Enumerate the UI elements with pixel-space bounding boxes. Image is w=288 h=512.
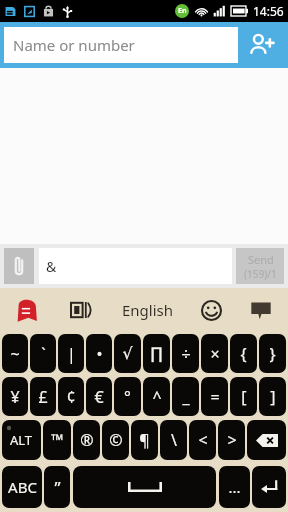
staticText: =: [210, 386, 220, 408]
button[interactable]: ∏: [143, 334, 170, 373]
button[interactable]: °: [114, 377, 141, 416]
button[interactable]: €: [86, 377, 112, 416]
staticText: >: [227, 429, 237, 451]
button[interactable]: ™: [43, 420, 71, 460]
button[interactable]: Theme: [234, 288, 288, 332]
staticText: ”: [54, 476, 61, 499]
staticText: ™: [51, 429, 64, 451]
staticText: √: [122, 344, 133, 363]
staticText: €: [94, 386, 104, 408]
button[interactable]: ALT: [2, 420, 41, 460]
staticText: ...: [228, 477, 241, 497]
button[interactable]: ×: [201, 334, 228, 373]
staticText: En: [178, 6, 187, 16]
button[interactable]: [: [230, 377, 257, 416]
button[interactable]: Add contact: [238, 27, 284, 63]
staticText: }: [269, 343, 276, 365]
staticText: £: [38, 386, 48, 408]
staticText: ×: [210, 343, 220, 365]
button[interactable]: ...: [219, 466, 250, 508]
staticText: <: [198, 429, 208, 451]
staticText: ©: [109, 429, 123, 451]
button[interactable]: •: [86, 334, 112, 373]
staticText: ALT: [10, 431, 33, 449]
button[interactable]: ^: [143, 377, 170, 416]
button[interactable]: {: [230, 334, 257, 373]
staticText: °: [124, 386, 131, 408]
button[interactable]: ¶: [131, 420, 158, 460]
button[interactable]: |: [58, 334, 84, 373]
staticText: ABC: [8, 477, 37, 497]
staticText: Send: [248, 252, 274, 267]
button[interactable]: English: [108, 288, 188, 332]
staticText: 14:56: [253, 3, 284, 19]
staticText: (159)/1: [244, 267, 277, 281]
button[interactable]: `: [30, 334, 56, 373]
staticText: |: [67, 343, 76, 365]
staticText: ∏: [150, 344, 163, 363]
staticText: Name or number: [13, 35, 135, 55]
button[interactable]: &: [39, 248, 232, 284]
button[interactable]: }: [259, 334, 286, 373]
button[interactable]: ¥: [2, 377, 28, 416]
button[interactable]: £: [30, 377, 56, 416]
staticText: \: [171, 429, 177, 451]
button[interactable]: Layout: [54, 288, 108, 332]
button[interactable]: ]: [259, 377, 286, 416]
button[interactable]: >: [218, 420, 245, 460]
button[interactable]: Send: [236, 248, 284, 284]
button[interactable]: \: [160, 420, 187, 460]
staticText: _: [182, 386, 190, 408]
button[interactable]: ~: [2, 334, 28, 373]
button[interactable]: Name or number: [4, 27, 238, 63]
staticText: ~: [10, 343, 20, 365]
staticText: •: [96, 343, 103, 365]
staticText: ¶: [139, 429, 150, 451]
button[interactable]: Emoji: [188, 288, 234, 332]
staticText: &: [46, 257, 57, 276]
staticText: English: [122, 300, 174, 320]
staticText: `: [41, 343, 46, 365]
staticText: ^: [152, 386, 162, 408]
button[interactable]: ©: [102, 420, 129, 460]
staticText: ¥: [10, 386, 20, 408]
staticText: ]: [270, 386, 276, 408]
button[interactable]: GO Keyboard: [0, 288, 54, 332]
staticText: ¢: [66, 386, 76, 408]
button[interactable]: ”: [44, 466, 70, 508]
staticText: ÷: [181, 343, 191, 365]
button[interactable]: Attach: [4, 248, 34, 284]
staticText: {: [240, 343, 247, 365]
button[interactable]: ABC: [2, 466, 42, 508]
button[interactable]: ¢: [58, 377, 84, 416]
button[interactable]: ÷: [172, 334, 199, 373]
staticText: [: [241, 386, 247, 408]
button[interactable]: ®: [73, 420, 100, 460]
button[interactable]: <: [189, 420, 216, 460]
button[interactable]: _: [172, 377, 199, 416]
button[interactable]: Backspace: [247, 420, 286, 460]
button[interactable]: Space: [73, 466, 216, 508]
button[interactable]: √: [114, 334, 141, 373]
button[interactable]: =: [201, 377, 228, 416]
staticText: ®: [80, 429, 94, 451]
button[interactable]: Enter: [252, 466, 286, 508]
